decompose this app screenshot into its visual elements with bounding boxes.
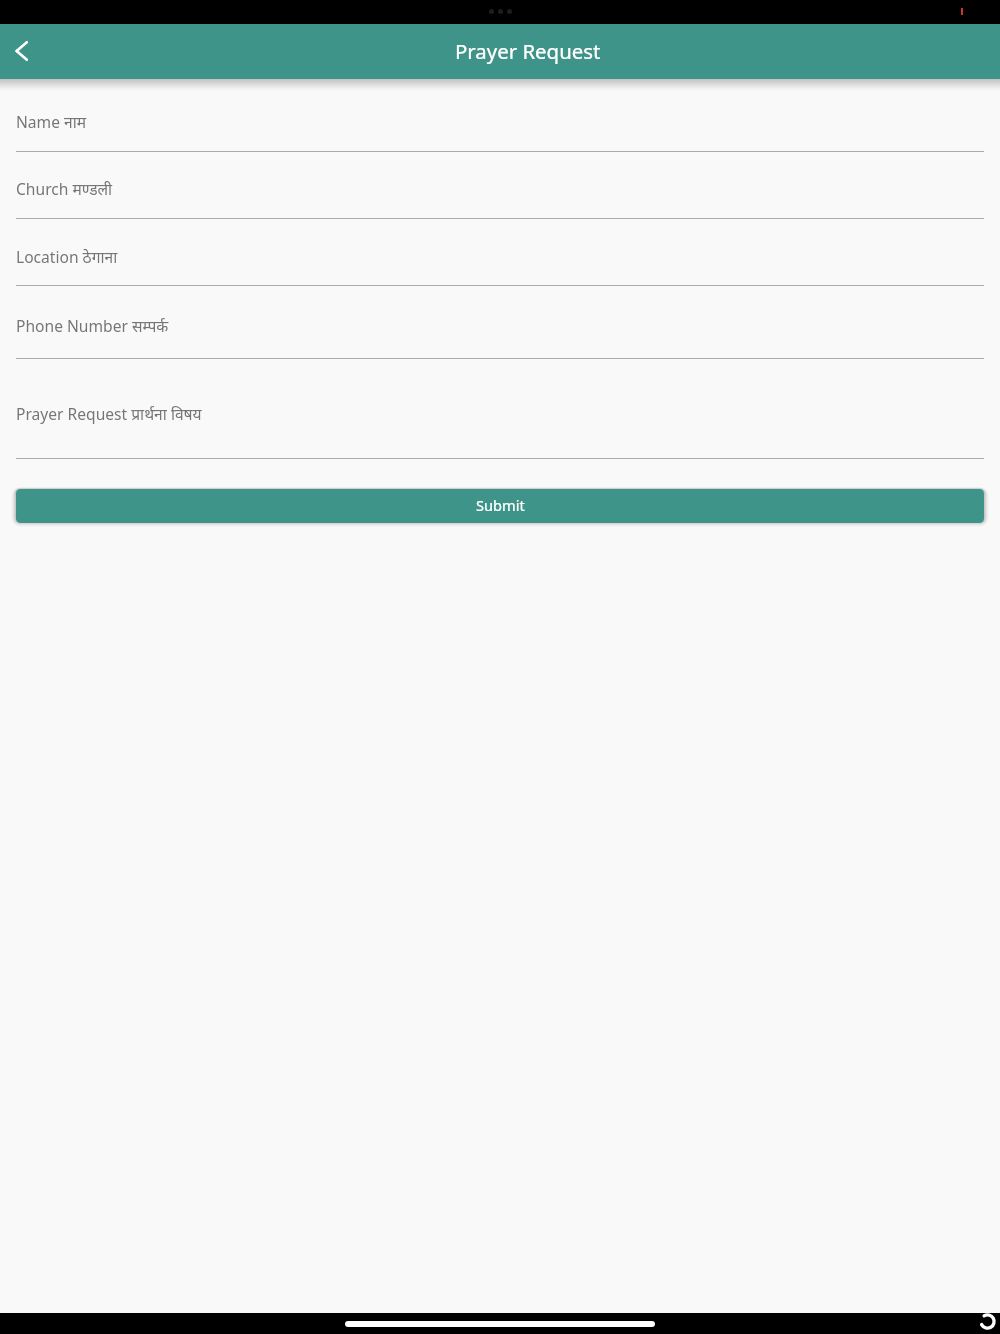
staticText: Church मण्डली: [16, 178, 113, 199]
button[interactable]: Prayer Request प्रार्थना विषय: [0, 403, 1000, 458]
button[interactable]: Name नाम: [0, 111, 1000, 151]
staticText: Location ठेगाना: [16, 246, 118, 267]
staticText: Prayer Request प्रार्थना विषय: [16, 403, 202, 424]
button[interactable]: Church मण्डली: [0, 178, 1000, 218]
button[interactable]: Back: [1, 29, 45, 73]
button[interactable]: Rotate screen: [978, 1313, 1000, 1334]
button[interactable]: Submit: [16, 489, 984, 523]
staticText: Submit: [476, 495, 525, 515]
staticText: Name नाम: [16, 111, 87, 132]
button[interactable]: Location ठेगाना: [0, 246, 1000, 286]
button[interactable]: Home: [345, 1313, 655, 1334]
button[interactable]: Phone Number सम्पर्क: [0, 315, 1000, 359]
staticText: Prayer Request: [455, 37, 601, 65]
staticText: Phone Number सम्पर्क: [16, 315, 169, 336]
